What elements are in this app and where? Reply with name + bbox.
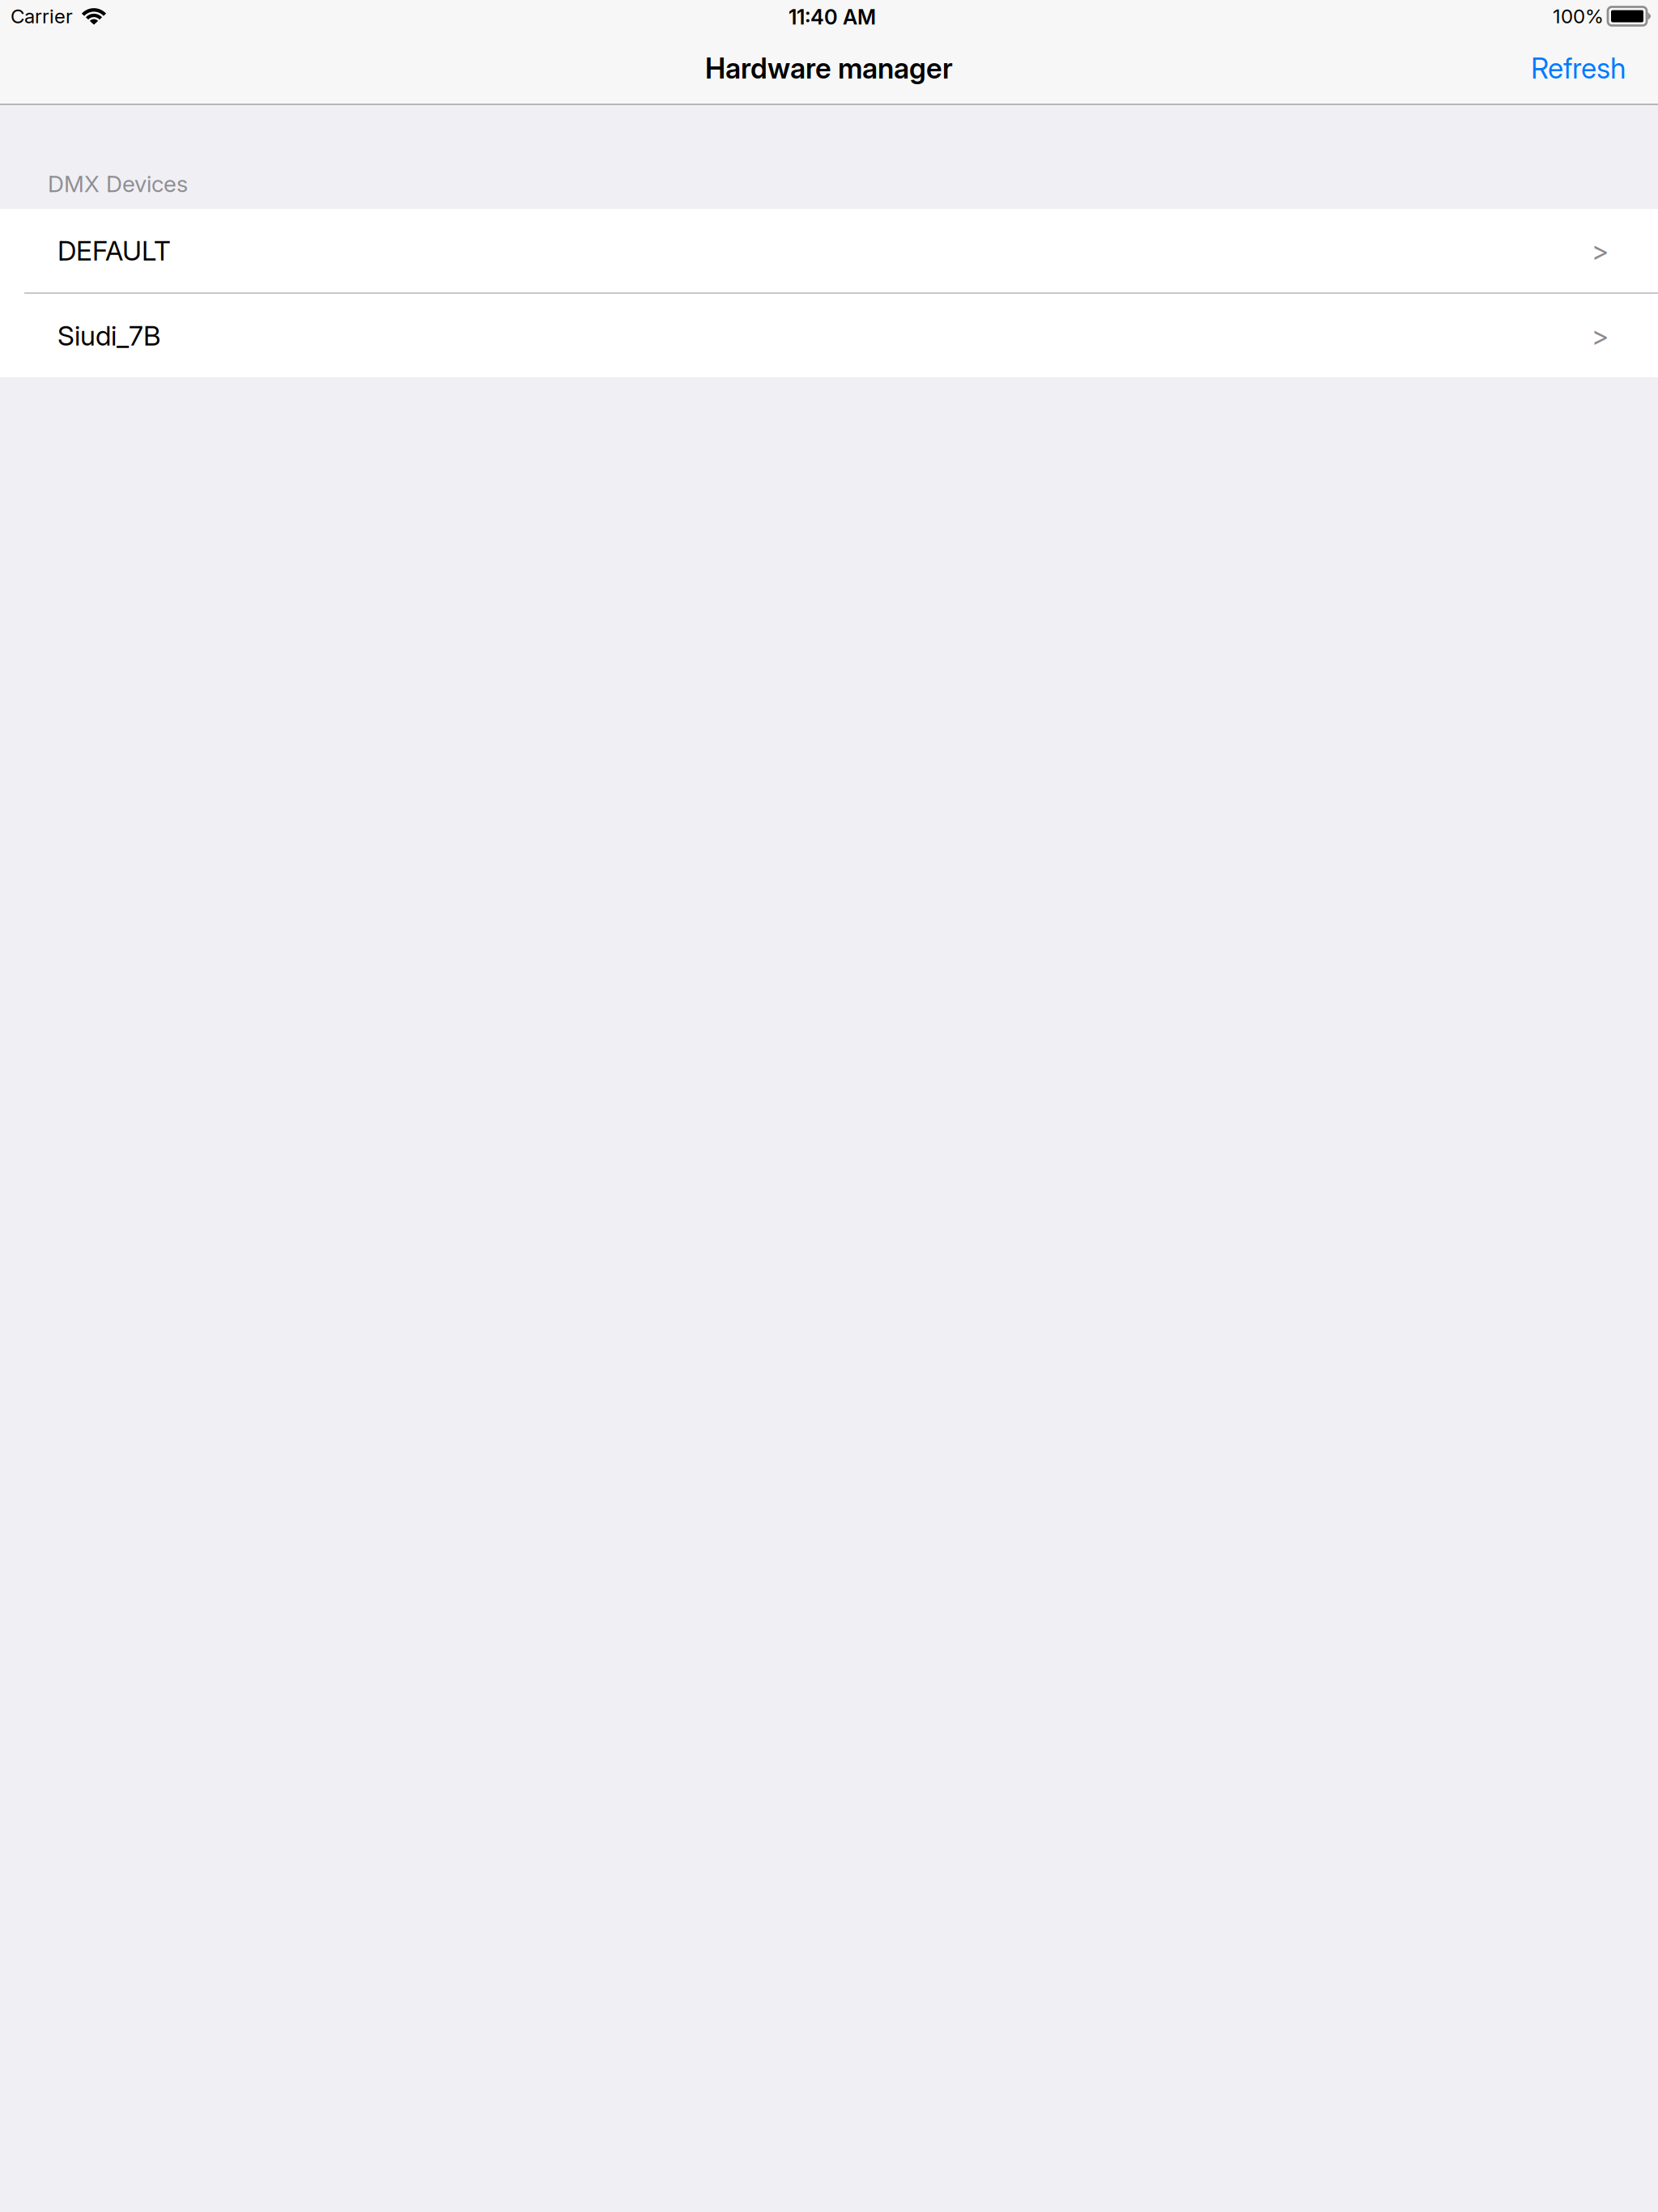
staticText: > — [1592, 319, 1609, 352]
staticText: Refresh — [1531, 51, 1626, 85]
staticText: Hardware manager — [705, 51, 953, 85]
staticText: > — [1592, 234, 1609, 267]
staticText: Carrier — [11, 4, 73, 28]
staticText: Siudi_7B — [57, 319, 160, 352]
button[interactable]: DEFAULT — [0, 209, 1658, 294]
staticText: 11:40 AM — [789, 5, 876, 29]
button[interactable]: Siudi_7B — [0, 294, 1658, 377]
staticText: 100% — [1553, 4, 1604, 28]
staticText: DMX Devices — [48, 170, 188, 198]
staticText: DEFAULT — [57, 234, 171, 267]
button[interactable]: Refresh — [1518, 41, 1639, 94]
